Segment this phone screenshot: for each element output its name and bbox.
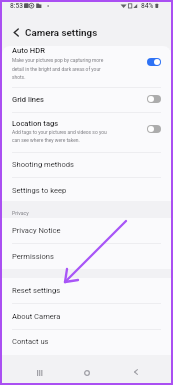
button[interactable]: Grid lines [2,88,171,112]
staticText: Location tags [12,119,59,128]
button[interactable]: Toggle [147,125,161,133]
button[interactable]: Back [125,362,149,382]
staticText: Auto HDR [12,46,45,55]
button[interactable]: Contact us [2,330,171,357]
button[interactable]: Auto HDR [2,46,171,87]
button[interactable]: Location tags [2,113,171,152]
staticText: About Camera [12,312,61,321]
button[interactable]: Home [76,362,100,382]
button[interactable]: Privacy Notice [2,218,171,243]
staticText: Reset settings [12,286,61,295]
button[interactable]: Shooting methods [2,153,171,177]
button[interactable]: Recent apps [27,362,51,382]
staticText: Add tags to your pictures and videos so … [12,129,107,135]
staticText: Grid lines [12,95,45,104]
staticText: 84% [141,2,154,10]
button[interactable]: Back [9,25,24,40]
staticText: 8:53 [10,2,23,10]
button[interactable]: Permissions [2,244,171,269]
button[interactable]: Reset settings [2,278,171,303]
staticText: Permissions [12,252,54,261]
button[interactable]: Toggle [147,95,161,103]
staticText: Privacy [12,210,29,216]
staticText: Contact us [12,337,49,346]
staticText: Privacy Notice [12,226,61,235]
staticText: Shooting methods [12,160,74,169]
staticText: detail in the bright and dark areas of y… [12,66,101,72]
staticText: Make your pictures pop by capturing more [12,57,104,63]
staticText: can see where they were taken. [12,137,80,143]
staticText: shots. [12,74,26,80]
staticText: Camera settings [25,27,98,38]
button[interactable]: About Camera [2,304,171,329]
staticText: Settings to keep [12,186,67,195]
button[interactable]: Toggle [147,58,161,66]
button[interactable]: Settings to keep [2,178,171,201]
